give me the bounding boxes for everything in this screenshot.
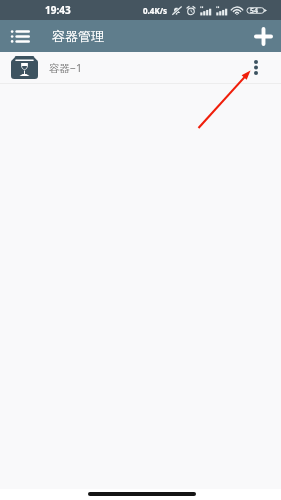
button[interactable]: Add — [249, 22, 277, 50]
button[interactable]: 容器−1 — [0, 52, 281, 84]
staticText: 54 — [250, 6, 259, 16]
staticText: 19:43 — [45, 3, 71, 17]
staticText: 容器−1 — [49, 61, 83, 75]
button[interactable]: Menu — [7, 23, 33, 49]
staticText: 0.4K/s — [143, 5, 168, 16]
button[interactable]: More options — [243, 55, 269, 81]
staticText: 容器管理 — [52, 28, 104, 44]
